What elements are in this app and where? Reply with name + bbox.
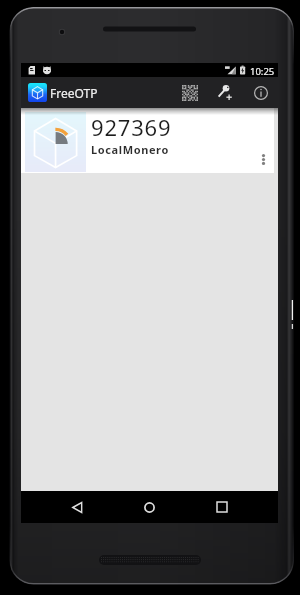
staticText: LocalMonero <box>91 142 169 157</box>
button[interactable]: Add token <box>212 77 238 108</box>
button[interactable]: Home <box>133 491 165 523</box>
staticText: 927369 <box>91 112 172 142</box>
button[interactable]: More options <box>251 147 275 171</box>
staticText: FreeOTP <box>50 85 98 101</box>
button[interactable]: Back <box>61 491 93 523</box>
button[interactable]: Scan QR code <box>177 77 203 108</box>
button[interactable]: 927369 <box>21 108 274 173</box>
button[interactable]: Recent apps <box>206 491 238 523</box>
staticText: 10:25 <box>250 65 275 78</box>
button[interactable]: About <box>248 77 274 108</box>
